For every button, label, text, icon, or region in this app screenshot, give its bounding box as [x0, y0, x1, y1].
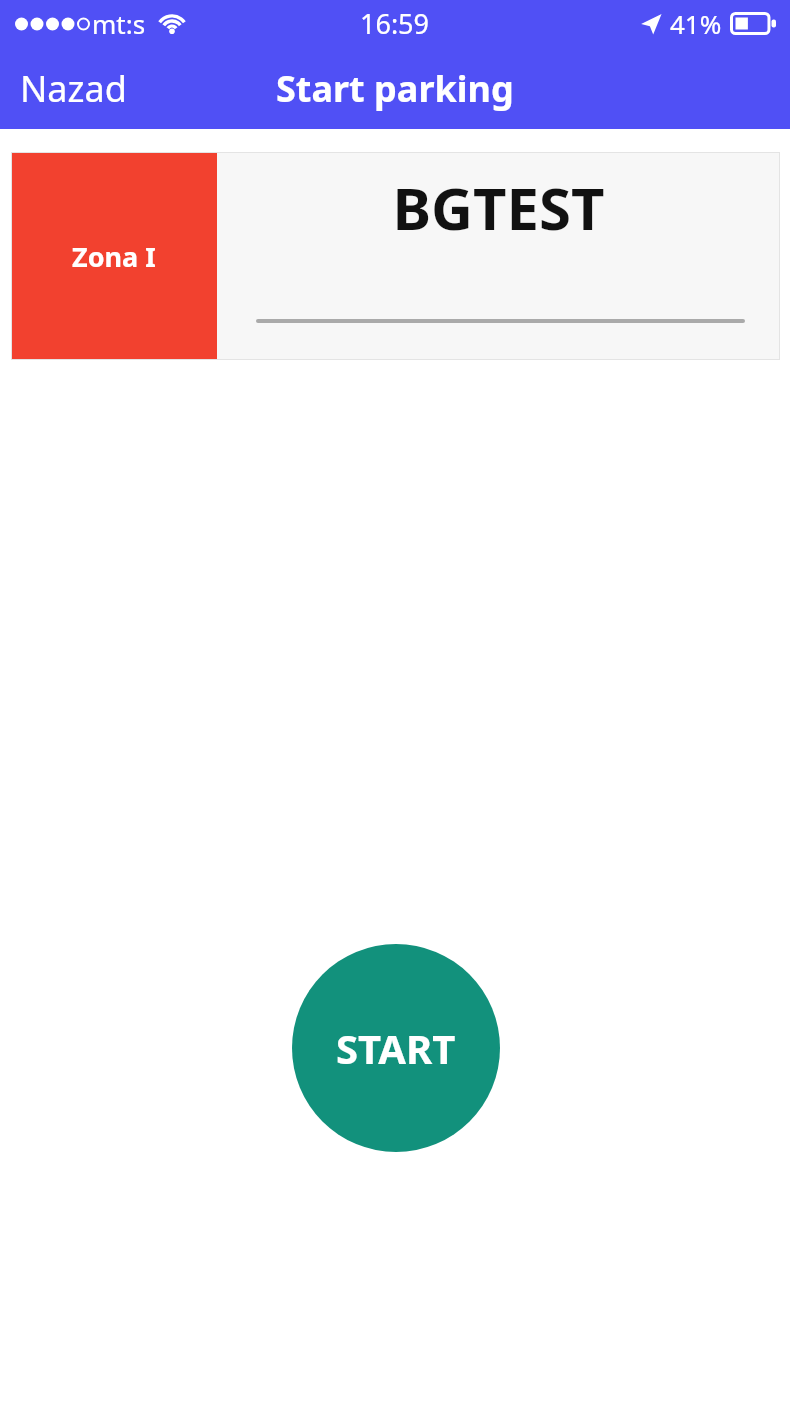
button[interactable]: Nazad	[0, 54, 149, 123]
staticText: Zona I	[72, 238, 156, 275]
staticText: BGTEST	[217, 168, 780, 247]
staticText: Start parking	[276, 64, 514, 113]
staticText: mt:s	[92, 6, 146, 41]
staticText: START	[336, 1021, 456, 1075]
button[interactable]: Zona I	[11, 152, 780, 360]
staticText: 41%	[670, 6, 722, 41]
staticText: 16:59	[360, 5, 430, 42]
button[interactable]: Start parking	[292, 944, 500, 1152]
staticText: Nazad	[20, 64, 127, 113]
